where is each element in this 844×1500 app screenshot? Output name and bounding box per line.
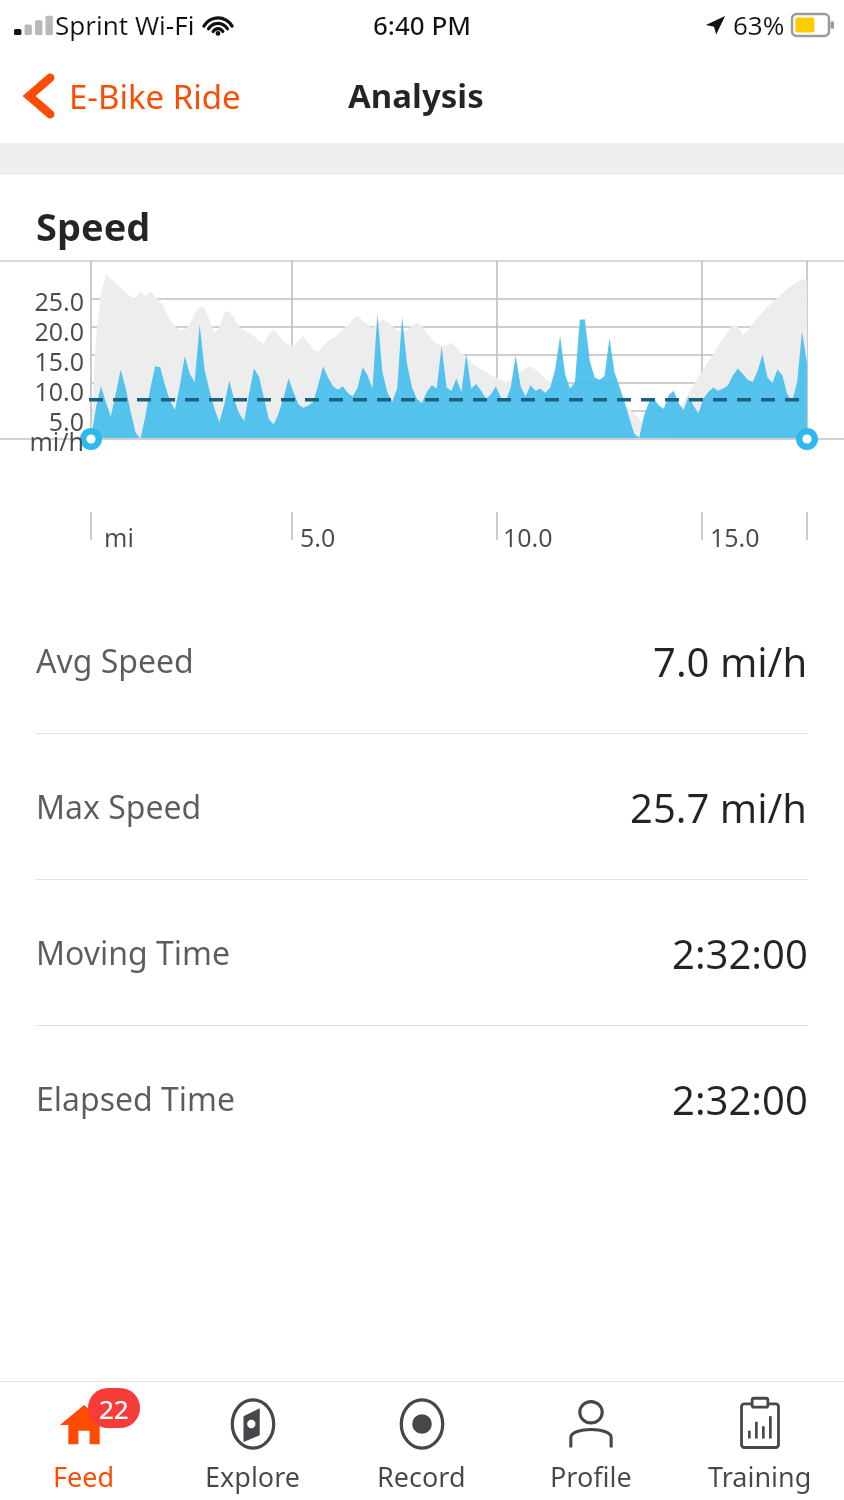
staticText: 20.0 — [0, 314, 84, 348]
button[interactable]: E-Bike Ride — [18, 66, 247, 126]
staticText: mi/h — [0, 424, 84, 458]
staticText: 10.0 — [503, 520, 553, 554]
staticText: 5.0 — [300, 520, 336, 554]
staticText: 5.0 — [0, 404, 84, 438]
button[interactable]: Elapsed Time — [0, 1026, 844, 1171]
staticText: 7.0 mi/h — [653, 634, 808, 688]
button[interactable]: Record — [337, 1382, 506, 1500]
staticText: 6:40 PM — [373, 7, 472, 42]
staticText: Training — [708, 1458, 812, 1495]
button[interactable]: Profile — [506, 1382, 675, 1500]
staticText: 15.0 — [0, 344, 84, 378]
staticText: 25.0 — [0, 284, 84, 318]
button[interactable]: Explore — [168, 1382, 337, 1500]
staticText: Avg Speed — [36, 639, 194, 683]
staticText: 2:32:00 — [672, 926, 808, 980]
button[interactable]: 22 — [0, 1382, 168, 1500]
staticText: 25.7 mi/h — [630, 780, 808, 834]
staticText: 63% — [733, 7, 785, 42]
staticText: E-Bike Ride — [69, 74, 241, 119]
button[interactable]: Max Speed — [0, 734, 844, 879]
staticText: Explore — [205, 1458, 301, 1495]
button[interactable]: Avg Speed — [0, 588, 844, 733]
staticText: Speed — [36, 200, 151, 252]
staticText: 22 — [99, 1391, 129, 1426]
staticText: Analysis — [348, 73, 484, 118]
staticText: Moving Time — [36, 931, 231, 975]
staticText: 10.0 — [0, 374, 84, 408]
staticText: Sprint Wi-Fi — [55, 7, 195, 42]
staticText: 2:32:00 — [672, 1072, 808, 1126]
staticText: Elapsed Time — [36, 1077, 236, 1121]
staticText: mi — [104, 520, 134, 554]
button[interactable]: Training — [675, 1382, 844, 1500]
button[interactable]: Moving Time — [0, 880, 844, 1025]
staticText: Max Speed — [36, 785, 202, 829]
staticText: Record — [377, 1458, 466, 1495]
staticText: Feed — [53, 1458, 115, 1495]
staticText: 15.0 — [710, 520, 760, 554]
staticText: Profile — [550, 1458, 632, 1495]
